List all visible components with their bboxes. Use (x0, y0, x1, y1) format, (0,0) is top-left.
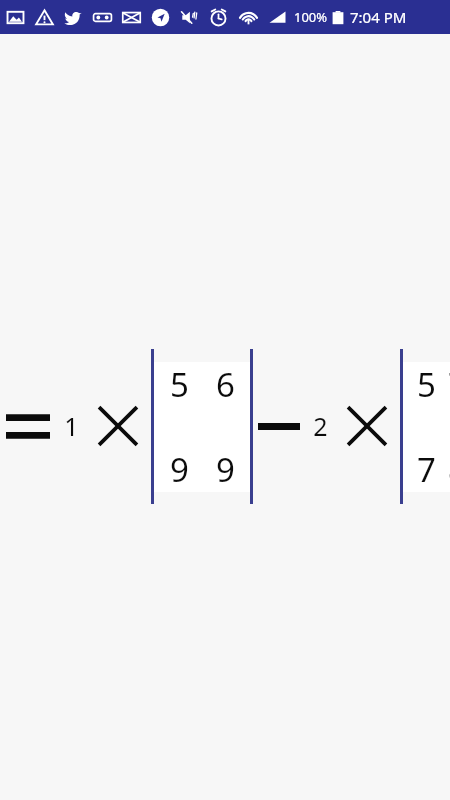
staticText: 1 (64, 409, 79, 443)
other: Alarm (209, 8, 228, 27)
other: Voicemail (93, 8, 112, 27)
staticText: 9 (216, 447, 235, 492)
other: Twitter (64, 8, 83, 27)
other: Signal (268, 8, 287, 27)
other: Gallery (6, 8, 25, 27)
staticText: 2 (313, 409, 328, 443)
staticText: 5 (170, 362, 189, 407)
other: Mail (122, 8, 141, 27)
other: Location (151, 8, 170, 27)
staticText: 7:04 PM (350, 7, 407, 27)
staticText: 7 (417, 447, 436, 492)
other: Warning (35, 8, 54, 27)
other: Wi-Fi (239, 8, 258, 27)
other: Vibrate (180, 8, 199, 27)
staticText: 100% (294, 8, 328, 26)
staticText: 9 (170, 447, 189, 492)
staticText: 6 (216, 362, 235, 407)
staticText: 5 (417, 362, 436, 407)
button[interactable]: 1 (0, 336, 450, 516)
